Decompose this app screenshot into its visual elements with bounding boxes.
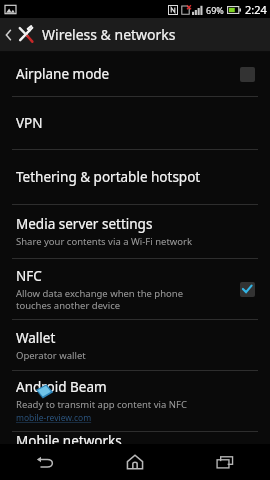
staticText: Android Beam: [16, 378, 107, 396]
staticText: Operator wallet: [16, 349, 86, 362]
staticText: Mobile networks: [16, 432, 122, 444]
button[interactable]: Back: [0, 444, 90, 480]
staticText: Wireless & networks: [42, 25, 176, 44]
staticText: Ready to transmit app content via NFC: [16, 398, 188, 411]
staticText: Wallet: [16, 329, 56, 347]
staticText: VPN: [16, 114, 43, 132]
other: Back: [4, 28, 13, 42]
staticText: 69%: [206, 4, 224, 16]
button[interactable]: Tethering & portable hotspot: [0, 150, 270, 204]
button[interactable]: Android Beam: [0, 371, 270, 431]
button[interactable]: VPN: [0, 97, 270, 149]
button[interactable]: Media server settings: [0, 205, 270, 258]
staticText: Allow data exchange when the phone touch…: [16, 287, 184, 312]
staticText: NFC: [16, 267, 42, 285]
staticText: Media server settings: [16, 215, 153, 233]
button[interactable]: Recent apps: [180, 444, 270, 480]
button[interactable]: Mobile networks: [0, 432, 270, 444]
button[interactable]: Unchecked: [236, 63, 258, 85]
staticText: Share your contents via a Wi-Fi network: [16, 235, 193, 248]
staticText: Tethering & portable hotspot: [16, 168, 201, 186]
button[interactable]: NFC: [0, 259, 270, 319]
button[interactable]: Airplane mode: [0, 52, 270, 96]
staticText: 2:24: [245, 2, 267, 17]
button[interactable]: Checked: [236, 278, 258, 300]
staticText: mobile-review.com: [16, 412, 92, 424]
staticText: Airplane mode: [16, 65, 110, 83]
button[interactable]: Wallet: [0, 320, 270, 370]
button[interactable]: Back: [0, 18, 270, 51]
button[interactable]: Home: [90, 444, 180, 480]
